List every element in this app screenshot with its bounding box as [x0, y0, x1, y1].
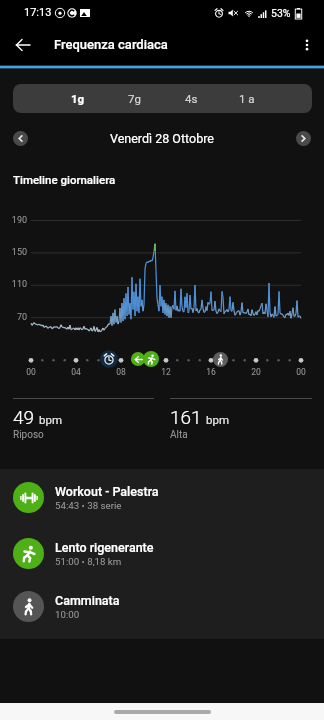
staticText: 7g	[128, 92, 141, 105]
staticText: 00	[289, 367, 313, 377]
staticText: 08	[109, 367, 133, 377]
staticText: 190	[0, 215, 27, 226]
staticText: 51:00 • 8,18 km	[55, 556, 122, 567]
button[interactable]: Sleep end	[101, 351, 117, 367]
button[interactable]: 7g	[106, 84, 162, 113]
button[interactable]: Workout	[131, 352, 145, 366]
button[interactable]: Camminata	[0, 579, 324, 633]
staticText: Workout - Palestra	[55, 484, 159, 499]
staticText: Alta	[170, 429, 188, 441]
staticText: 49	[13, 406, 35, 428]
button[interactable]: Workout - Palestra	[0, 470, 324, 524]
staticText: 110	[0, 279, 27, 290]
staticText: Riposo	[13, 429, 44, 441]
staticText: Camminata	[55, 593, 120, 608]
button[interactable]: Lento rigenerante	[0, 526, 324, 580]
staticText: 70	[0, 312, 27, 323]
button[interactable]: Walk	[213, 352, 228, 367]
staticText: 17:13	[24, 6, 52, 19]
staticText: Frequenza cardiaca	[54, 37, 168, 52]
staticText: bpm	[206, 413, 229, 426]
staticText: Lento rigenerante	[55, 540, 154, 555]
button[interactable]: Run	[143, 351, 159, 367]
staticText: 00	[19, 367, 43, 377]
button[interactable]: More options	[294, 32, 320, 58]
button[interactable]: Next day	[296, 131, 311, 146]
staticText: Timeline giornaliera	[13, 173, 116, 186]
button[interactable]: Previous day	[13, 131, 28, 146]
button[interactable]: 1g	[50, 84, 106, 113]
staticText: 1 a	[239, 92, 255, 105]
staticText: 04	[64, 367, 88, 377]
staticText: 1g	[71, 92, 85, 105]
button[interactable]: 1 a	[219, 84, 275, 113]
staticText: 161	[170, 406, 202, 428]
staticText: Venerdì 28 Ottobre	[110, 131, 214, 146]
staticText: bpm	[39, 413, 62, 426]
staticText: 12	[154, 367, 178, 377]
staticText: 150	[0, 247, 27, 258]
staticText: 54:43 • 38 serie	[55, 500, 122, 511]
staticText: 53%	[271, 7, 291, 19]
button[interactable]: Back	[10, 32, 36, 58]
button[interactable]: 4s	[163, 84, 219, 113]
staticText: 10:00	[55, 609, 80, 620]
staticText: 16	[199, 367, 223, 377]
staticText: 20	[244, 367, 268, 377]
staticText: 4s	[185, 92, 198, 105]
